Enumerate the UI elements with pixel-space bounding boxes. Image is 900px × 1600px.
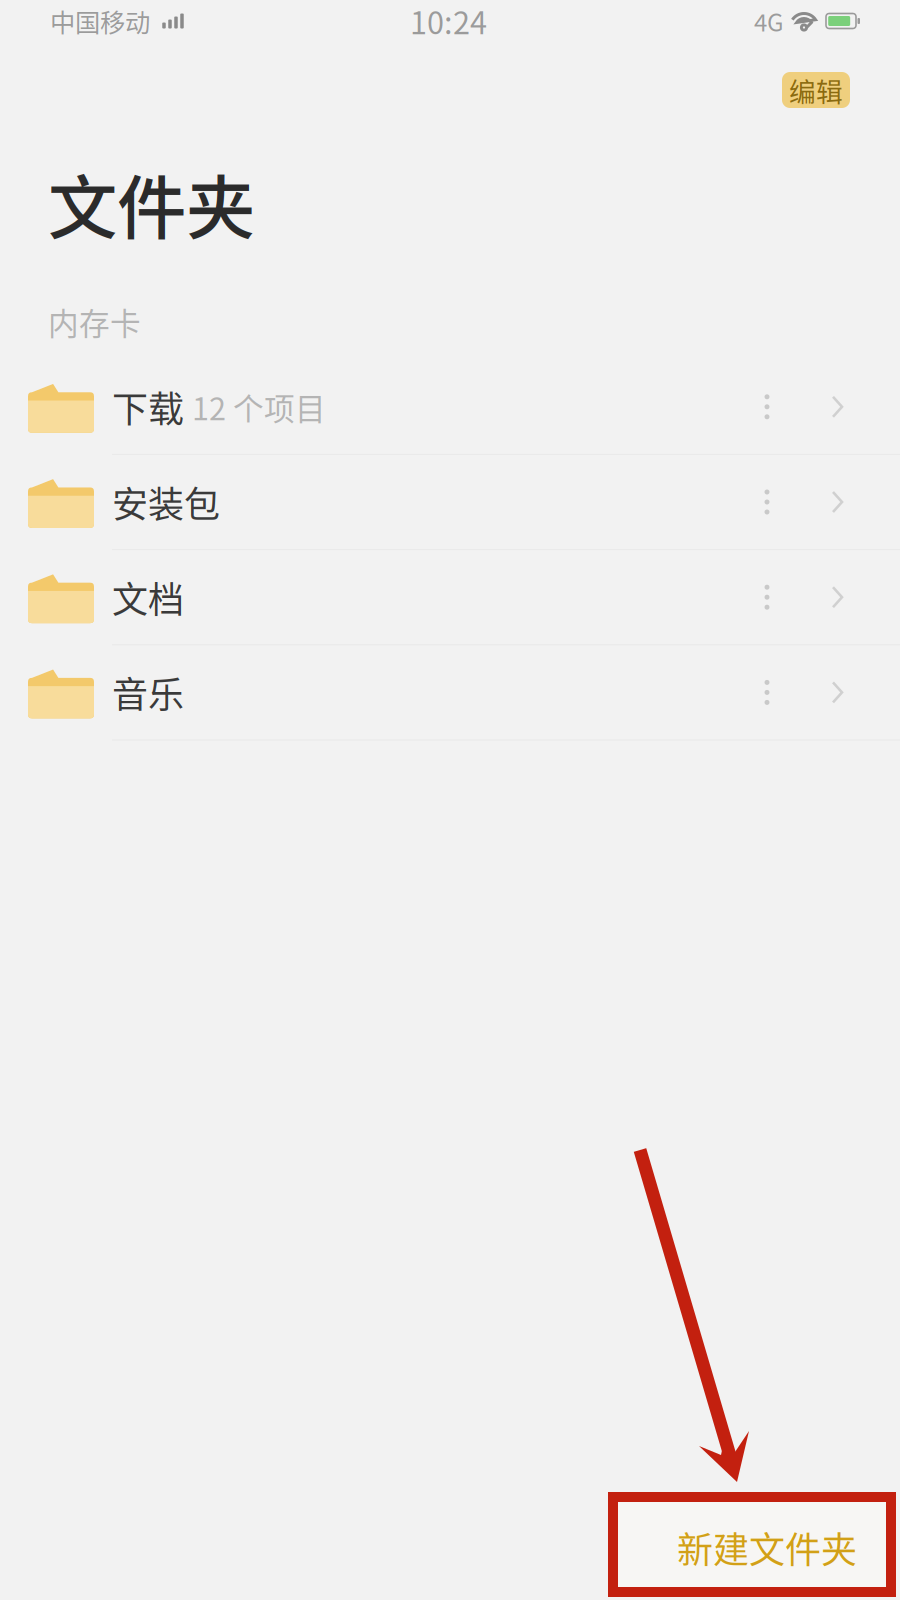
staticText: 中国移动	[50, 3, 150, 39]
staticText: 10:24	[410, 0, 487, 43]
staticText: 4G	[754, 4, 784, 38]
staticText: 文档	[112, 571, 184, 623]
staticText: 安装包	[112, 476, 220, 528]
button[interactable]: 更多选项	[754, 360, 780, 454]
button[interactable]: 新建文件夹	[613, 1497, 891, 1592]
staticText: 文件夹	[48, 153, 255, 253]
staticText: 编辑	[789, 71, 843, 109]
staticText: 12 个项目	[192, 385, 326, 429]
button[interactable]: 打开 安装包	[780, 455, 846, 549]
button[interactable]: 下载	[0, 360, 754, 454]
staticText: 音乐	[112, 666, 184, 718]
button[interactable]: 更多选项	[754, 455, 780, 549]
staticText: 内存卡	[48, 299, 141, 344]
button[interactable]: 更多选项	[754, 645, 780, 739]
button[interactable]: 打开 音乐	[780, 645, 846, 739]
button[interactable]: 安装包	[0, 455, 754, 549]
button[interactable]: 音乐	[0, 645, 754, 739]
button[interactable]: 打开 文档	[780, 550, 846, 644]
button[interactable]: 打开 下载	[780, 360, 846, 454]
button[interactable]: 编辑	[782, 72, 850, 108]
staticText: 新建文件夹	[677, 1521, 857, 1573]
button[interactable]: 更多选项	[754, 550, 780, 644]
staticText: 下载	[112, 381, 184, 433]
button[interactable]: 文档	[0, 550, 754, 644]
